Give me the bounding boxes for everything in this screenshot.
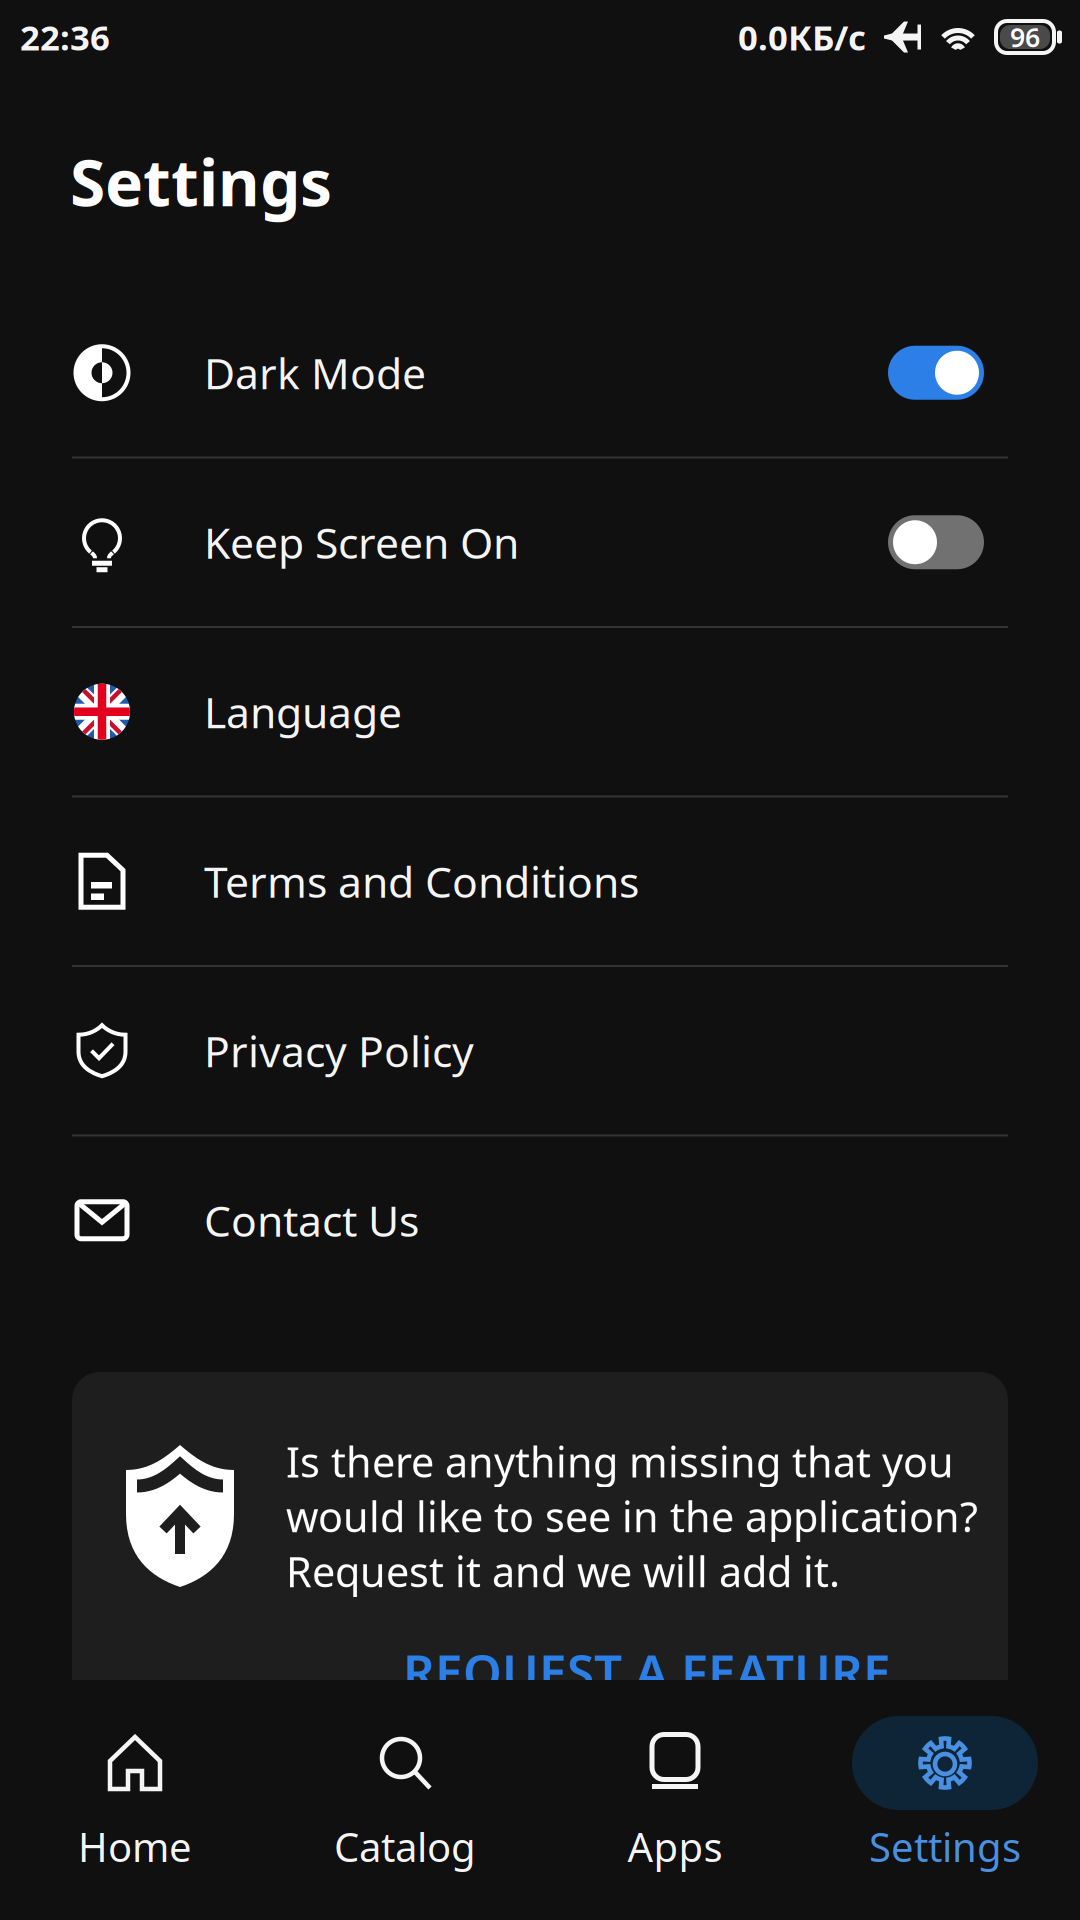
staticText: 22:36 [20,14,110,60]
button[interactable]: Catalog [270,1680,540,1920]
button[interactable]: Keep Screen On [0,458,1080,626]
button[interactable]: Privacy Policy [0,967,1080,1134]
staticText: Home [78,1820,192,1873]
staticText: Keep Screen On [204,514,519,571]
button[interactable]: Home [0,1680,270,1920]
staticText: Apps [627,1820,722,1873]
button[interactable]: Language [0,628,1080,795]
staticText: Terms and Conditions [204,853,639,910]
staticText: REQUEST A FEATURE [403,1639,891,1704]
button[interactable]: Settings [810,1680,1080,1920]
staticText: Settings [869,1820,1021,1873]
button[interactable]: Request a feature [286,1639,1008,1704]
button[interactable]: Terms and Conditions [0,797,1080,965]
staticText: 0.0КБ/c [738,14,866,60]
staticText: Is there anything missing that you would… [286,1434,978,1599]
staticText: Settings [70,139,332,224]
button[interactable]: Contact Us [0,1136,1080,1304]
button[interactable]: Dark Mode [0,289,1080,456]
staticText: Catalog [334,1820,476,1873]
staticText: Dark Mode [204,344,426,401]
staticText: Privacy Policy [204,1022,474,1079]
staticText: Language [204,683,402,740]
staticText: 96 [1010,19,1040,55]
button[interactable]: Apps [540,1680,810,1920]
staticText: Contact Us [204,1192,419,1249]
